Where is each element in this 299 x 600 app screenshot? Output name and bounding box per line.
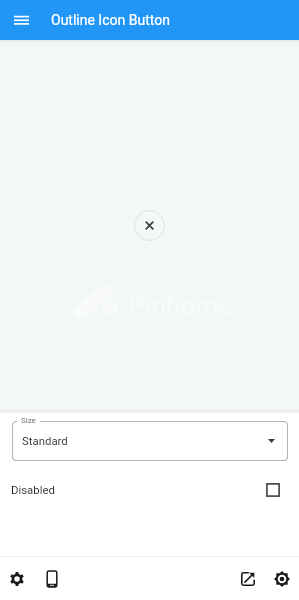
button[interactable]: Close: [134, 210, 165, 241]
button[interactable]: Device preview: [38, 561, 66, 597]
button[interactable]: Menu: [9, 8, 33, 32]
staticText: Outline Icon Button: [51, 12, 170, 28]
button[interactable]: Settings: [3, 561, 31, 597]
staticText: Standard: [22, 434, 68, 447]
button[interactable]: Display settings: [268, 561, 296, 597]
button[interactable]: Standard: [12, 421, 288, 461]
staticText: Size: [21, 416, 36, 425]
button[interactable]: Open in new: [234, 561, 262, 597]
staticText: Disabled: [11, 483, 55, 496]
button[interactable]: Disabled: [0, 479, 299, 501]
